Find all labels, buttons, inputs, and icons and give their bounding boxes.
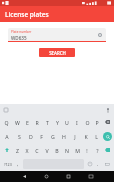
- button[interactable]: R: [32, 115, 42, 129]
- button[interactable]: O: [82, 115, 92, 129]
- button[interactable]: T: [42, 115, 52, 129]
- button[interactable]: Back: [20, 172, 29, 181]
- button[interactable]: H: [58, 129, 69, 143]
- staticText: Y: [56, 119, 59, 126]
- staticText: F: [40, 133, 43, 140]
- staticText: D: [29, 133, 33, 140]
- button[interactable]: G: [47, 129, 58, 143]
- button[interactable]: J: [69, 129, 80, 143]
- button[interactable]: Stickers: [3, 107, 9, 113]
- staticText: X: [25, 147, 29, 154]
- staticText: B: [55, 147, 59, 154]
- button[interactable]: F: [36, 129, 47, 143]
- button[interactable]: Backspace: [102, 143, 113, 157]
- button[interactable]: U: [62, 115, 72, 129]
- button[interactable]: Home: [42, 172, 51, 181]
- button[interactable]: A: [1, 129, 13, 143]
- staticText: .: [97, 161, 99, 167]
- button[interactable]: E: [22, 115, 32, 129]
- button[interactable]: Plate number: [8, 28, 106, 41]
- staticText: E: [26, 119, 29, 126]
- button[interactable]: N: [62, 143, 72, 157]
- button[interactable]: X: [22, 143, 32, 157]
- staticText: U: [65, 119, 69, 126]
- button[interactable]: Voice input: [105, 107, 111, 113]
- button[interactable]: L: [91, 129, 102, 143]
- staticText: R: [35, 119, 39, 126]
- button[interactable]: C: [32, 143, 42, 157]
- button[interactable]: B: [52, 143, 62, 157]
- button[interactable]: M: [72, 143, 82, 157]
- staticText: K: [84, 133, 88, 140]
- staticText: S: [18, 133, 21, 140]
- staticText: License plates: [5, 10, 49, 19]
- button[interactable]: Clear text: [97, 32, 103, 38]
- staticText: H: [62, 133, 66, 140]
- staticText: ?: [96, 147, 99, 154]
- button[interactable]: Search: [102, 129, 113, 143]
- button[interactable]: Shift: [1, 143, 12, 157]
- button[interactable]: V: [42, 143, 52, 157]
- button[interactable]: Y: [52, 115, 62, 129]
- button[interactable]: .: [94, 159, 102, 169]
- button[interactable]: W: [12, 115, 22, 129]
- staticText: SEARCH: [49, 50, 66, 56]
- button[interactable]: !: [82, 143, 92, 157]
- staticText: G: [51, 133, 55, 140]
- staticText: N: [65, 147, 69, 154]
- staticText: J: [74, 133, 76, 140]
- staticText: M: [75, 147, 80, 154]
- button[interactable]: ,: [14, 159, 22, 169]
- button[interactable]: P: [92, 115, 102, 129]
- button[interactable]: ?: [92, 143, 102, 157]
- button[interactable]: Z: [12, 143, 22, 157]
- staticText: O: [85, 119, 90, 126]
- button[interactable]: Backspace: [102, 115, 113, 129]
- staticText: ,: [17, 161, 19, 167]
- button[interactable]: Recents: [64, 172, 73, 181]
- staticText: WD635: [11, 35, 27, 41]
- button[interactable]: Hide keyboard: [86, 172, 95, 181]
- staticText: V: [45, 147, 49, 154]
- button[interactable]: Emoji: [85, 159, 94, 169]
- staticText: ?123: [4, 162, 12, 167]
- button[interactable]: ?123: [1, 159, 14, 169]
- button[interactable]: I: [72, 115, 82, 129]
- staticText: !: [86, 147, 88, 154]
- staticText: Plate number: [11, 30, 32, 34]
- staticText: T: [46, 119, 49, 126]
- button[interactable]: K: [80, 129, 91, 143]
- staticText: P: [95, 119, 99, 126]
- button[interactable]: Enter: [102, 159, 113, 169]
- staticText: W: [15, 119, 20, 126]
- button[interactable]: SEARCH: [39, 48, 75, 57]
- staticText: Z: [16, 147, 19, 154]
- staticText: L: [95, 133, 98, 140]
- button[interactable]: D: [25, 129, 36, 143]
- button[interactable]: S: [13, 129, 25, 143]
- button[interactable]: Q: [1, 115, 12, 129]
- staticText: I: [76, 119, 78, 126]
- staticText: A: [5, 133, 9, 140]
- staticText: Q: [4, 119, 9, 126]
- staticText: C: [35, 147, 39, 154]
